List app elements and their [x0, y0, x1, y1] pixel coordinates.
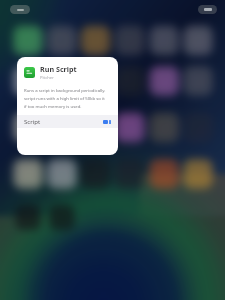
staticText: Script — [24, 118, 41, 126]
other: Status — [10, 5, 30, 14]
button[interactable]: Script — [17, 115, 118, 128]
staticText: Run Script — [40, 64, 77, 74]
staticText: Runs a script in background periodically… — [24, 87, 111, 93]
other: Battery — [198, 5, 217, 14]
staticText: Pitcher — [40, 75, 54, 81]
staticText: if too much memory is used. — [24, 103, 82, 109]
staticText: script runs with a high limit of 50kb so… — [24, 95, 111, 101]
